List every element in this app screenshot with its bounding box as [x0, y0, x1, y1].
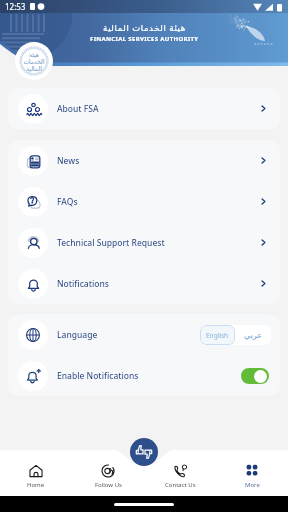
staticText: هيئة الخدمات المالية	[103, 22, 186, 34]
staticText: Contact Us	[165, 481, 196, 489]
staticText: News	[57, 155, 80, 167]
button[interactable]: Feedback	[130, 438, 158, 466]
staticText: FAQs	[57, 196, 78, 208]
button[interactable]: Home	[0, 456, 72, 496]
staticText: 12:53	[5, 1, 26, 12]
button[interactable]: Contact Us	[144, 456, 216, 496]
staticText: FINANCIAL SERVICES AUTHORITY	[90, 35, 199, 43]
button[interactable]: About FSA	[8, 88, 280, 129]
staticText: English	[206, 331, 229, 340]
button[interactable]: English	[200, 325, 235, 345]
staticText: هيئة الخدمات المالية	[23, 51, 45, 72]
staticText: Language	[57, 329, 98, 341]
button[interactable]: More	[216, 456, 288, 496]
button[interactable]: Follow Us	[72, 456, 144, 496]
button[interactable]: Notifications	[8, 263, 280, 304]
button[interactable]: FAQs	[8, 181, 280, 222]
staticText: About FSA	[57, 103, 99, 115]
staticText: More	[245, 481, 260, 489]
staticText: عربي	[244, 331, 263, 340]
button[interactable]: News	[8, 140, 280, 181]
button[interactable]: Enable notifications toggle	[241, 368, 269, 384]
staticText: Technical Support Request	[57, 237, 165, 249]
button[interactable]: Language	[8, 314, 280, 355]
button[interactable]: عربي	[235, 325, 271, 345]
staticText: Home	[27, 481, 45, 489]
staticText: Notifications	[57, 278, 109, 290]
staticText: Enable Notifications	[57, 370, 139, 382]
staticText: Follow Us	[95, 481, 122, 489]
button[interactable]: Technical Support Request	[8, 222, 280, 263]
button[interactable]: Enable Notifications	[8, 355, 280, 396]
